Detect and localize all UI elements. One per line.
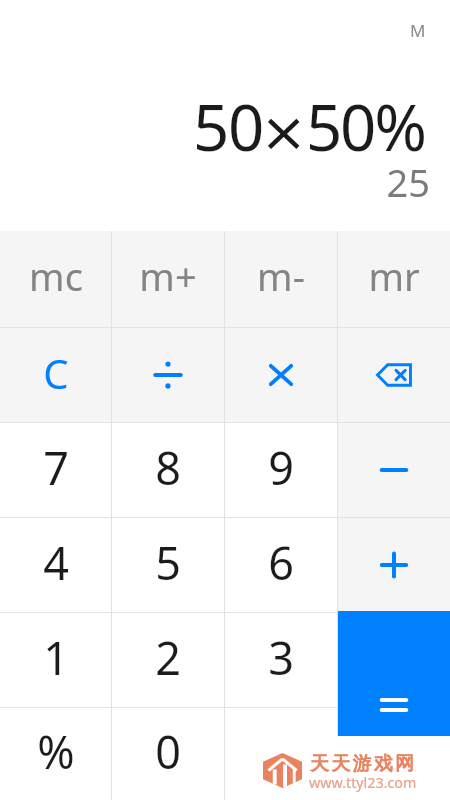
button[interactable]: Memory indicator: [401, 18, 435, 42]
button[interactable]: [338, 708, 450, 800]
button[interactable]: 9: [225, 423, 337, 517]
staticText: 4: [43, 532, 69, 593]
staticText: 1: [43, 627, 69, 688]
staticText: .: [275, 721, 288, 782]
staticText: 7: [43, 437, 69, 498]
staticText: 8: [155, 437, 181, 498]
staticText: mr: [368, 250, 420, 302]
button[interactable]: 3: [225, 613, 337, 707]
staticText: 5: [155, 532, 181, 593]
button[interactable]: 0: [112, 708, 224, 800]
button[interactable]: 4: [0, 518, 111, 612]
staticText: mc: [29, 250, 83, 302]
button[interactable]: %: [0, 708, 111, 800]
staticText: m-: [257, 250, 305, 302]
staticText: M: [410, 19, 426, 42]
button[interactable]: 2: [112, 613, 224, 707]
button[interactable]: Backspace: [338, 328, 450, 422]
button[interactable]: [338, 518, 450, 612]
button[interactable]: 1: [0, 613, 111, 707]
staticText: 50%: [306, 83, 425, 169]
button[interactable]: [338, 613, 450, 707]
staticText: %: [37, 721, 75, 782]
button[interactable]: mc: [0, 231, 111, 327]
button[interactable]: 6: [225, 518, 337, 612]
staticText: C: [43, 346, 69, 400]
button[interactable]: m-: [225, 231, 337, 327]
staticText: 50: [193, 83, 264, 169]
staticText: www.ttyl23.com: [309, 773, 417, 792]
button[interactable]: Multiply: [225, 328, 337, 422]
staticText: 9: [268, 437, 294, 498]
staticText: 0: [155, 721, 181, 782]
button[interactable]: 5: [112, 518, 224, 612]
staticText: 6: [268, 532, 294, 593]
button[interactable]: Divide: [112, 328, 224, 422]
staticText: 天天游戏网: [309, 752, 415, 776]
button[interactable]: 8: [112, 423, 224, 517]
button[interactable]: m+: [112, 231, 224, 327]
button[interactable]: [338, 423, 450, 517]
button[interactable]: C: [0, 328, 111, 422]
staticText: 2: [155, 627, 181, 688]
button[interactable]: mr: [338, 231, 450, 327]
button[interactable]: .: [225, 708, 337, 800]
staticText: 25: [386, 156, 430, 208]
button[interactable]: Equals: [338, 611, 450, 736]
button[interactable]: 7: [0, 423, 111, 517]
staticText: m+: [139, 250, 197, 302]
staticText: 3: [268, 627, 294, 688]
